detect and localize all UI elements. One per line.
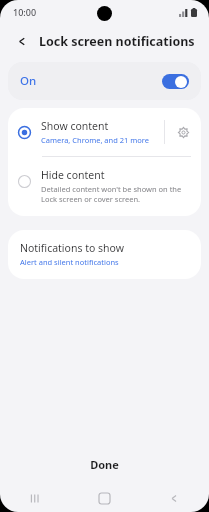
staticText: Show content	[41, 119, 109, 133]
button[interactable]: Recents	[0, 484, 69, 512]
button[interactable]: Notifications to show	[8, 230, 201, 279]
staticText: Notifications to show	[20, 241, 124, 255]
button[interactable]: Back	[139, 484, 209, 512]
button[interactable]: Show content	[8, 108, 201, 156]
staticText: Lock screen notifications	[39, 33, 195, 50]
button[interactable]: On	[8, 62, 201, 100]
button[interactable]: Hide content	[8, 157, 201, 216]
button[interactable]: Done	[0, 444, 209, 484]
staticText: On	[20, 73, 37, 89]
staticText: 10:00	[13, 6, 37, 18]
staticText: Alert and silent notifications	[20, 257, 119, 267]
staticText: Camera, Chrome, and 21 more	[41, 135, 150, 145]
button[interactable]: Home	[69, 484, 139, 512]
button[interactable]: Settings	[165, 109, 201, 155]
staticText: Detailed content won't be shown on the L…	[41, 184, 189, 204]
button[interactable]: Back	[10, 29, 34, 53]
staticText: Done	[90, 457, 119, 472]
staticText: Hide content	[41, 168, 105, 182]
